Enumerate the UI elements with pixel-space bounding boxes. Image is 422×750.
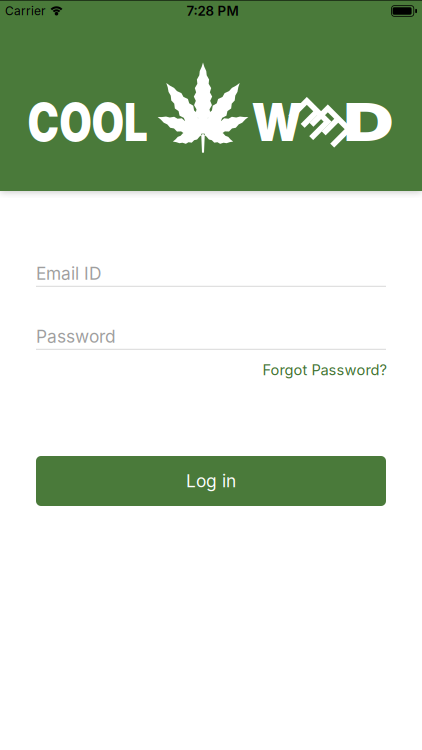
staticText: W [249,91,305,153]
staticText: COOL [13,91,161,153]
staticText: D [350,91,388,153]
staticText: Password [36,326,116,347]
button[interactable]: Forgot Password? [262,361,386,379]
staticText: Forgot Password? [262,361,386,379]
button[interactable]: Password [36,325,386,350]
button[interactable]: Email ID [36,262,386,287]
staticText: Email ID [36,263,102,284]
staticText: 7:28 PM [186,3,238,19]
staticText: Carrier [5,4,46,18]
staticText: Log in [186,471,236,491]
button[interactable]: Log in [36,456,386,506]
